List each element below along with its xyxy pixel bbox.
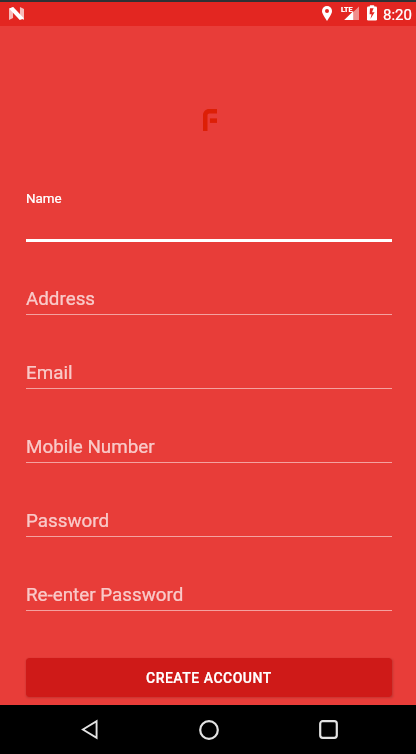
staticText: LTE [341,5,353,13]
staticText: Name [26,191,62,207]
button[interactable]: Recent apps [304,705,352,754]
button[interactable]: Password [26,504,392,537]
button[interactable]: Back [66,705,114,754]
staticText: Password [26,510,110,532]
button[interactable]: Email [26,356,392,389]
button[interactable]: CREATE ACCOUNT [26,658,392,697]
staticText: 8:20 [383,6,412,24]
staticText: Email [26,362,73,384]
staticText: Address [26,288,96,310]
button[interactable]: Mobile Number [26,430,392,463]
button[interactable]: Name [26,186,392,244]
staticText: Re-enter Password [26,584,184,606]
button[interactable]: Re-enter Password [26,578,392,611]
staticText: Mobile Number [26,436,155,458]
staticText: CREATE ACCOUNT [146,670,272,686]
button[interactable]: Home [185,705,233,754]
button[interactable]: Address [26,282,392,315]
